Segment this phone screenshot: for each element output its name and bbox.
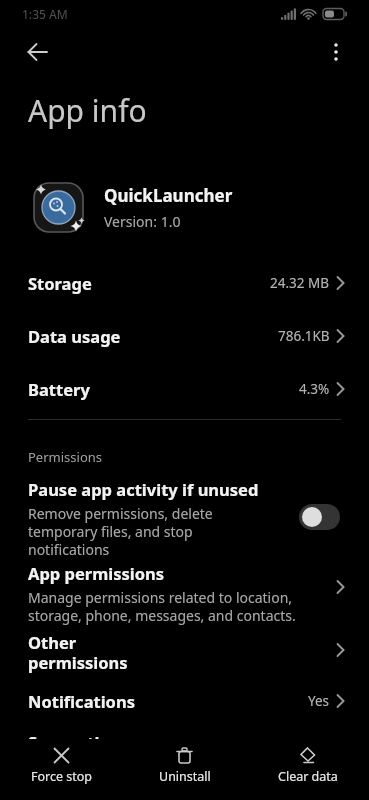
- button[interactable]: Data usage: [0, 309, 369, 362]
- staticText: Data usage: [28, 325, 121, 347]
- staticText: Notifications: [28, 690, 135, 712]
- staticText: Other permissions: [28, 631, 336, 674]
- staticText: Version: 1.0: [104, 212, 181, 231]
- button[interactable]: Pause app activity if unused: [0, 478, 369, 559]
- staticText: Remove permissions, delete temporary fil…: [28, 504, 213, 559]
- staticText: Force stop: [31, 768, 93, 785]
- button[interactable]: Clear data: [246, 739, 369, 785]
- staticText: Battery: [28, 378, 90, 400]
- button[interactable]: QuickLauncher: [33, 182, 369, 233]
- button[interactable]: [299, 504, 340, 530]
- button[interactable]: Force stop: [0, 739, 123, 785]
- staticText: Yes: [308, 692, 330, 710]
- staticText: Manage permissions related to location, …: [28, 588, 296, 625]
- staticText: Screen time: [28, 731, 126, 753]
- button[interactable]: Other permissions: [0, 631, 369, 674]
- staticText: Pause app activity if unused: [28, 478, 259, 500]
- staticText: 1:35 AM: [22, 6, 68, 22]
- button[interactable]: App permissions: [0, 562, 369, 625]
- staticText: 24.32 MB: [270, 274, 330, 292]
- staticText: App permissions: [28, 562, 165, 584]
- button[interactable]: Notifications: [0, 690, 369, 712]
- staticText: Permissions: [28, 448, 103, 466]
- staticText: Clear data: [278, 768, 338, 785]
- staticText: Uninstall: [159, 768, 211, 785]
- button[interactable]: Storage: [0, 256, 369, 309]
- button[interactable]: [28, 43, 48, 61]
- button[interactable]: [334, 43, 338, 61]
- staticText: Storage: [28, 272, 92, 294]
- staticText: App info: [28, 90, 147, 131]
- staticText: 4.3%: [299, 380, 330, 398]
- button[interactable]: Uninstall: [123, 739, 246, 785]
- staticText: 786.1KB: [278, 327, 330, 345]
- button[interactable]: Battery: [0, 362, 369, 415]
- staticText: QuickLauncher: [104, 184, 233, 207]
